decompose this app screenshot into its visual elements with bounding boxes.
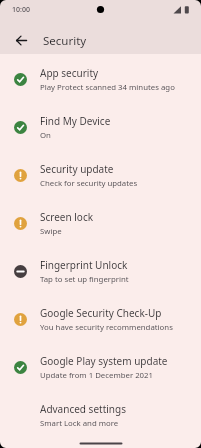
staticText: 10:00 [12, 5, 30, 15]
staticText: Google Security Check-Up [40, 306, 162, 320]
staticText: Find My Device [40, 114, 111, 128]
staticText: Swipe [40, 226, 62, 237]
button[interactable]: Find My Device [0, 104, 201, 151]
staticText: Security [43, 33, 87, 49]
button[interactable]: App security [0, 56, 201, 103]
staticText: Check for security updates [40, 178, 138, 189]
staticText: Fingerprint Unlock [40, 258, 128, 272]
staticText: App security [40, 66, 99, 80]
staticText: On [40, 130, 51, 141]
button[interactable] [8, 27, 35, 54]
staticText: Tap to set up fingerprint [40, 274, 129, 285]
button[interactable]: Google Security Check-Up [0, 296, 201, 343]
button[interactable]: Fingerprint Unlock [0, 248, 201, 295]
staticText: Advanced settings [40, 402, 126, 416]
button[interactable]: Screen lock [0, 200, 201, 247]
staticText: Update from 1 December 2021 [40, 370, 153, 381]
staticText: Google Play system update [40, 354, 168, 368]
staticText: You have security recommendations [40, 322, 173, 333]
staticText: Screen lock [40, 210, 94, 224]
staticText: Play Protect scanned 34 minutes ago [40, 82, 175, 93]
button[interactable]: Advanced settings [0, 392, 201, 439]
button[interactable]: Google Play system update [0, 344, 201, 391]
button[interactable]: Security update [0, 152, 201, 199]
staticText: Smart Lock and more [40, 418, 119, 429]
staticText: Security update [40, 162, 114, 176]
